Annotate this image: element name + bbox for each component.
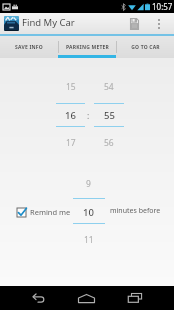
- button[interactable]: GO TO CAR: [116, 36, 174, 58]
- staticText: 10:57: [152, 1, 173, 12]
- staticText: SAVE INFO: [15, 44, 43, 51]
- staticText: 56: [104, 137, 114, 149]
- staticText: PARKING METER: [66, 44, 109, 51]
- button[interactable]: More options: [150, 13, 167, 34]
- staticText: 55: [104, 109, 115, 122]
- button[interactable]: 11: [72, 232, 105, 248]
- button[interactable]: 16: [56, 107, 85, 123]
- button[interactable]: PARKING METER: [58, 36, 116, 58]
- staticText: 11: [84, 234, 94, 246]
- button[interactable]: 10: [72, 204, 105, 220]
- staticText: 16: [65, 109, 76, 122]
- button[interactable]: Home: [71, 286, 102, 310]
- button[interactable]: 54: [94, 79, 124, 95]
- staticText: 9: [86, 178, 91, 190]
- button[interactable]: 15: [56, 79, 85, 95]
- staticText: 17: [66, 137, 76, 149]
- button[interactable]: Recents: [119, 286, 150, 310]
- button[interactable]: Remind me: [17, 207, 71, 217]
- staticText: 10: [83, 206, 94, 219]
- staticText: 15: [66, 81, 76, 93]
- staticText: Remind me: [30, 207, 71, 217]
- staticText: GO TO CAR: [131, 44, 160, 51]
- staticText: :: [87, 110, 90, 120]
- button[interactable]: 9: [72, 176, 105, 192]
- button[interactable]: SAVE INFO: [0, 36, 58, 58]
- button[interactable]: Save: [124, 13, 144, 34]
- button[interactable]: 55: [94, 107, 124, 123]
- staticText: 54: [104, 81, 114, 93]
- staticText: Find My Car: [22, 16, 75, 29]
- button[interactable]: 17: [56, 135, 85, 151]
- button[interactable]: 56: [94, 135, 124, 151]
- button[interactable]: Back: [22, 286, 53, 310]
- staticText: minutes before: [110, 206, 161, 216]
